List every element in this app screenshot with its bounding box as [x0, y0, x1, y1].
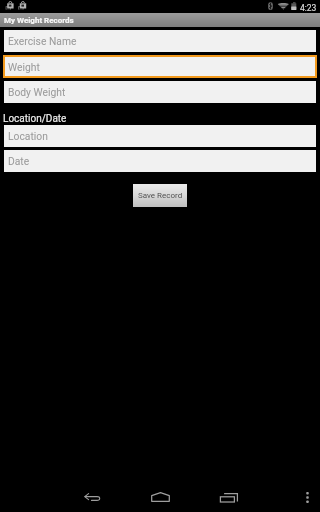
button[interactable]: Home [143, 482, 177, 512]
button[interactable]: Location [4, 125, 316, 147]
staticText: Date [8, 155, 30, 167]
button[interactable]: Weight [5, 57, 315, 76]
staticText: Exercise Name [8, 35, 77, 47]
button[interactable]: Recent apps [212, 482, 246, 512]
button[interactable]: Date [4, 150, 316, 172]
button[interactable]: Save Record [133, 184, 187, 207]
staticText: Weight [8, 61, 40, 73]
button[interactable]: Body Weight [4, 81, 316, 103]
staticText: Body Weight [8, 86, 66, 98]
staticText: 4:23 [300, 3, 317, 13]
button[interactable]: More options [298, 482, 316, 512]
button[interactable]: Back [75, 482, 109, 512]
staticText: Location [8, 130, 48, 142]
staticText: Save Record [138, 191, 183, 200]
staticText: Location/Date [3, 113, 67, 125]
staticText: My Weight Records [4, 16, 74, 25]
button[interactable]: Exercise Name [4, 30, 316, 52]
